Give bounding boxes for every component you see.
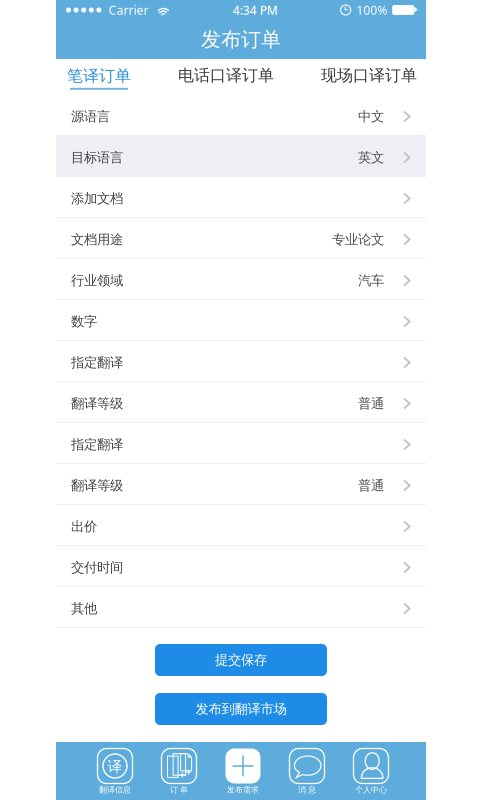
staticText: 文档用途 xyxy=(71,231,123,248)
staticText: 专业论文 xyxy=(332,231,384,248)
staticText: 指定翻译 xyxy=(71,354,123,371)
button[interactable]: 译 xyxy=(83,748,147,795)
button[interactable]: 指定翻译 xyxy=(56,341,426,382)
staticText: 普通 xyxy=(358,395,384,412)
button[interactable]: 现场口译订单 xyxy=(321,57,417,97)
button[interactable]: 文档用途 xyxy=(56,218,426,259)
button[interactable]: 翻译等级 xyxy=(56,382,426,423)
staticText: 提交保存 xyxy=(215,652,267,668)
button[interactable]: 指定翻译 xyxy=(56,423,426,464)
staticText: 添加文档 xyxy=(71,190,123,207)
staticText: 英文 xyxy=(358,149,384,166)
staticText: 汽车 xyxy=(358,272,384,289)
button[interactable]: 交付时间 xyxy=(56,546,426,587)
staticText: 100% xyxy=(356,2,387,18)
staticText: Carrier xyxy=(108,2,148,18)
button[interactable]: 源语言 xyxy=(56,95,426,136)
button[interactable]: 订 单 xyxy=(147,748,211,795)
button[interactable]: 翻译等级 xyxy=(56,464,426,505)
staticText: 翻译等级 xyxy=(71,395,123,412)
staticText: 指定翻译 xyxy=(71,436,123,453)
button[interactable]: 电话口译订单 xyxy=(178,57,274,97)
staticText: 消 息 xyxy=(298,785,316,795)
staticText: 源语言 xyxy=(71,108,110,125)
button[interactable]: 发布需求 xyxy=(211,748,275,795)
button[interactable]: 个人中心 xyxy=(339,748,403,795)
staticText: 出价 xyxy=(71,518,97,535)
button[interactable]: 出价 xyxy=(56,505,426,546)
button[interactable]: 数字 xyxy=(56,300,426,341)
staticText: 发布订单 xyxy=(201,27,281,52)
button[interactable]: 行业领域 xyxy=(56,259,426,300)
button[interactable]: 消 息 xyxy=(275,748,339,795)
button[interactable]: 目标语言 xyxy=(56,136,426,177)
staticText: 译 xyxy=(107,757,122,775)
button[interactable]: 添加文档 xyxy=(56,177,426,218)
staticText: 普通 xyxy=(358,477,384,494)
staticText: 订 单 xyxy=(170,785,188,795)
staticText: 翻译信息 xyxy=(99,785,131,795)
staticText: 其他 xyxy=(71,600,97,617)
staticText: 现场口译订单 xyxy=(321,66,417,85)
staticText: 数字 xyxy=(71,313,97,330)
staticText: 交付时间 xyxy=(71,559,123,576)
staticText: 4:34 PM xyxy=(233,2,278,18)
button[interactable]: 其他 xyxy=(56,587,426,628)
staticText: 发布到翻译市场 xyxy=(195,701,286,717)
button[interactable]: 发布到翻译市场 xyxy=(155,693,327,725)
staticText: 笔译订单 xyxy=(67,66,131,86)
button[interactable]: 提交保存 xyxy=(155,644,327,676)
staticText: 行业领域 xyxy=(71,272,123,289)
staticText: 中文 xyxy=(358,108,384,125)
staticText: 个人中心 xyxy=(355,785,387,795)
staticText: 电话口译订单 xyxy=(178,66,274,85)
staticText: 目标语言 xyxy=(71,149,123,166)
button[interactable]: 笔译订单 xyxy=(67,57,131,97)
staticText: 翻译等级 xyxy=(71,477,123,494)
staticText: 发布需求 xyxy=(227,785,259,795)
